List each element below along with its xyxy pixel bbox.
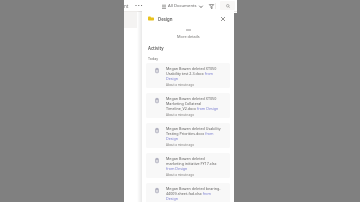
button[interactable]: More options <box>134 1 143 10</box>
staticText: About a minute ago <box>166 143 194 147</box>
staticText: All Documents <box>168 3 197 9</box>
staticText: Megan Bowen deleted bearing- 44009-sheet… <box>166 186 221 201</box>
staticText: Megan Bowen deleted Usability Testing Pr… <box>166 126 221 141</box>
staticText: More details <box>177 34 200 39</box>
staticText: Design <box>158 16 173 22</box>
staticText: Today <box>148 56 158 61</box>
button[interactable]: Megan Bowen deleted bearing- 44009-sheet… <box>146 183 230 202</box>
button[interactable]: Filter <box>207 2 215 10</box>
button[interactable]: More details <box>142 24 234 39</box>
button[interactable]: Megan Bowen deleted Usability Testing Pr… <box>146 123 230 148</box>
button[interactable]: Megan Bowen deleted marketing initiative… <box>146 153 230 178</box>
staticText: Activity <box>148 45 164 51</box>
staticText: Megan Bowen deleted marketing initiative… <box>166 156 217 171</box>
button[interactable]: All Documents <box>162 3 203 9</box>
button[interactable]: Search <box>220 1 235 10</box>
button[interactable]: Close <box>219 15 226 22</box>
button[interactable]: Megan Bowen deleted XT050 Marketing Coll… <box>146 93 230 118</box>
staticText: Megan Bowen deleted XT050 Marketing Coll… <box>166 96 219 111</box>
button[interactable]: Megan Bowen deleted XT050 Usability test… <box>146 63 230 88</box>
staticText: nt <box>124 3 129 9</box>
staticText: About a minute ago <box>166 173 194 177</box>
staticText: About a minute ago <box>166 83 194 87</box>
staticText: Megan Bowen deleted XT050 Usability test… <box>166 66 217 81</box>
staticText: About a minute ago <box>166 113 194 117</box>
